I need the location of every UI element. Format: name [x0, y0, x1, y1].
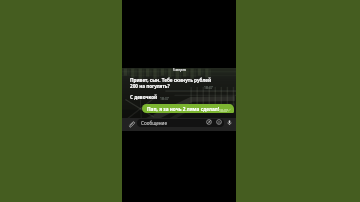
button[interactable]: Emoji	[216, 119, 222, 125]
staticText: Пап, я за ночь 2 ляма сделал!	[147, 106, 220, 112]
button[interactable]: Attach	[127, 120, 136, 129]
button[interactable]: Пап, я за ночь 2 ляма сделал!	[142, 104, 234, 113]
staticText: 18:37	[160, 96, 169, 101]
button[interactable]: Voice message	[226, 119, 233, 126]
staticText: 18:37	[204, 85, 213, 90]
button[interactable]: Сообщение	[137, 119, 224, 127]
staticText: Сообщение	[141, 120, 167, 126]
staticText: 5 августа	[173, 68, 186, 72]
staticText: Привет, сын. Тебе скинуть рублей	[130, 77, 212, 83]
staticText: С девочкой	[130, 94, 158, 100]
staticText: 200 на погулять?	[130, 83, 170, 89]
staticText: 18:37	[219, 108, 228, 113]
button[interactable]: Self-destruct timer	[206, 119, 212, 125]
